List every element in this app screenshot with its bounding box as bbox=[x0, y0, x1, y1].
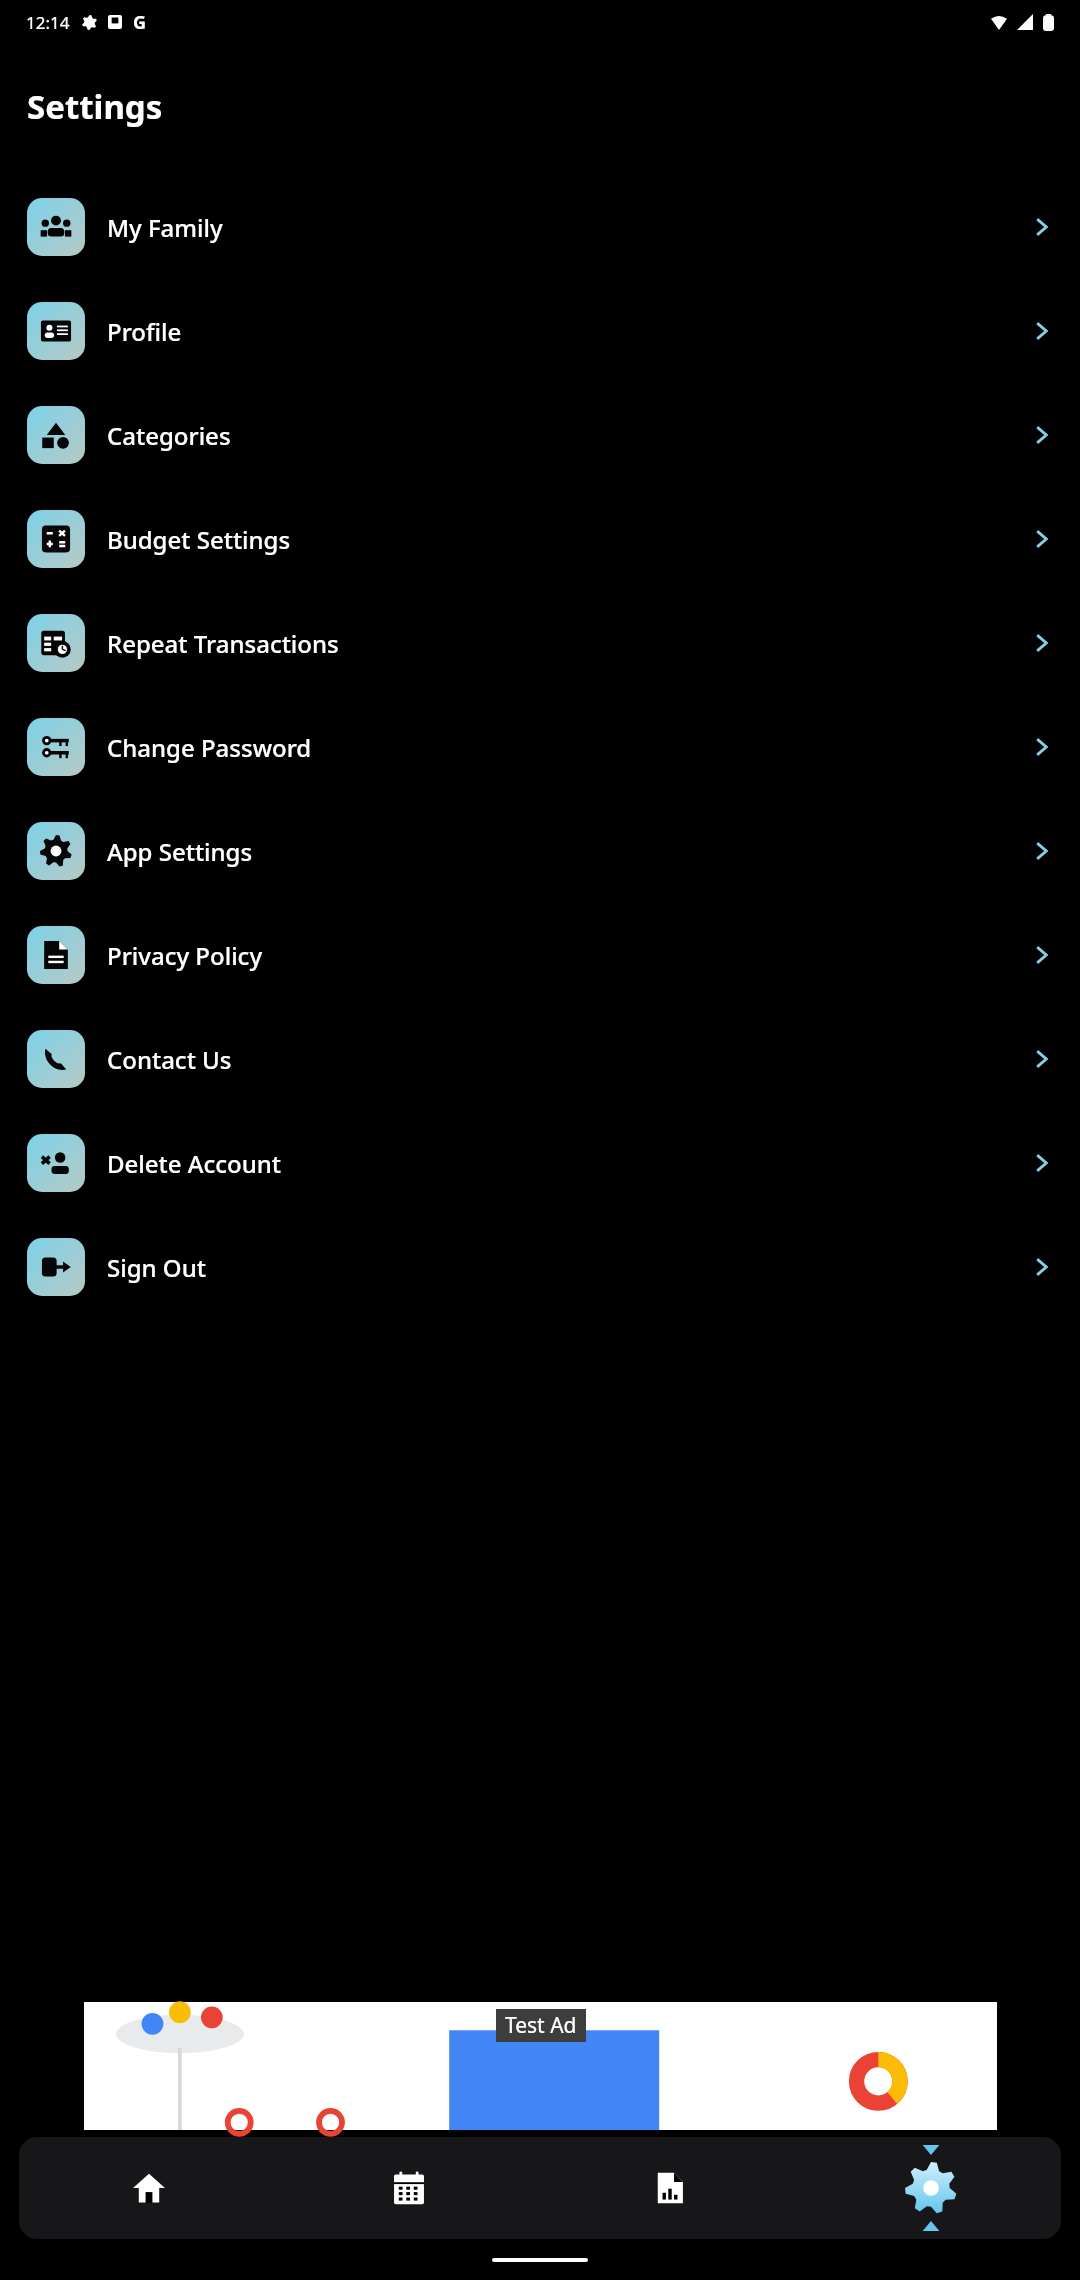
staticText: Delete Account bbox=[107, 1147, 282, 1180]
button[interactable]: Home bbox=[19, 2137, 279, 2239]
button[interactable]: App Settings bbox=[0, 799, 1080, 903]
button[interactable]: Sign Out bbox=[0, 1215, 1080, 1319]
staticText: Contact Us bbox=[107, 1043, 232, 1076]
staticText: Categories bbox=[107, 419, 231, 452]
staticText: Privacy Policy bbox=[107, 939, 263, 972]
staticText: 12:14 bbox=[26, 11, 70, 34]
staticText: My Family bbox=[107, 211, 223, 244]
button[interactable]: My Family bbox=[0, 175, 1080, 279]
staticText: G bbox=[133, 10, 147, 35]
staticText: Change Password bbox=[107, 731, 312, 764]
staticText: Test Ad bbox=[505, 2011, 577, 2040]
button[interactable]: Repeat Transactions bbox=[0, 591, 1080, 695]
button[interactable]: Reports bbox=[539, 2137, 800, 2239]
button[interactable]: Budget Settings bbox=[0, 487, 1080, 591]
button[interactable]: Advertisement bbox=[84, 2002, 997, 2130]
staticText: Sign Out bbox=[107, 1251, 206, 1284]
button[interactable]: Delete Account bbox=[0, 1111, 1080, 1215]
button[interactable]: Categories bbox=[0, 383, 1080, 487]
button[interactable]: Contact Us bbox=[0, 1007, 1080, 1111]
staticText: Budget Settings bbox=[107, 523, 291, 556]
staticText: Settings bbox=[27, 84, 163, 129]
button[interactable]: Change Password bbox=[0, 695, 1080, 799]
button[interactable]: Calendar bbox=[279, 2137, 539, 2239]
button[interactable]: Settings bbox=[800, 2137, 1061, 2239]
staticText: Repeat Transactions bbox=[107, 627, 339, 660]
button[interactable]: Profile bbox=[0, 279, 1080, 383]
staticText: App Settings bbox=[107, 835, 253, 868]
staticText: Profile bbox=[107, 315, 182, 348]
button[interactable]: Privacy Policy bbox=[0, 903, 1080, 1007]
